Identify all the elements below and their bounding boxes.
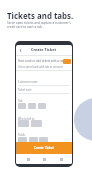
button[interactable]: Add xyxy=(63,59,71,64)
staticText: Serve open tickets and capture a custome… xyxy=(7,21,72,29)
button[interactable] xyxy=(38,103,46,109)
button[interactable]: Nav 2 xyxy=(56,154,66,164)
button[interactable] xyxy=(18,103,26,109)
button[interactable]: Create Ticket xyxy=(16,142,72,154)
button[interactable] xyxy=(29,137,38,143)
staticText: Ticket note xyxy=(18,88,32,92)
staticText: Tab xyxy=(18,99,23,103)
staticText: Create Ticket xyxy=(34,146,54,150)
button[interactable]: Nav 0 xyxy=(23,154,33,164)
button[interactable] xyxy=(39,137,48,143)
button[interactable]: Back xyxy=(17,47,23,53)
staticText: Create Ticket xyxy=(31,47,57,52)
staticText: Who to bill to xyxy=(18,117,35,121)
staticText: Use a saved card with tab or amount xyxy=(18,65,63,69)
staticText: Public xyxy=(18,133,26,137)
button[interactable] xyxy=(28,103,36,109)
button[interactable] xyxy=(18,137,27,143)
staticText: Start a tab or add tickets with a card xyxy=(18,59,66,63)
staticText: Tickets and tabs. xyxy=(7,11,74,22)
staticText: Customer name xyxy=(18,80,38,84)
button[interactable]: Nav 1 xyxy=(39,154,49,164)
